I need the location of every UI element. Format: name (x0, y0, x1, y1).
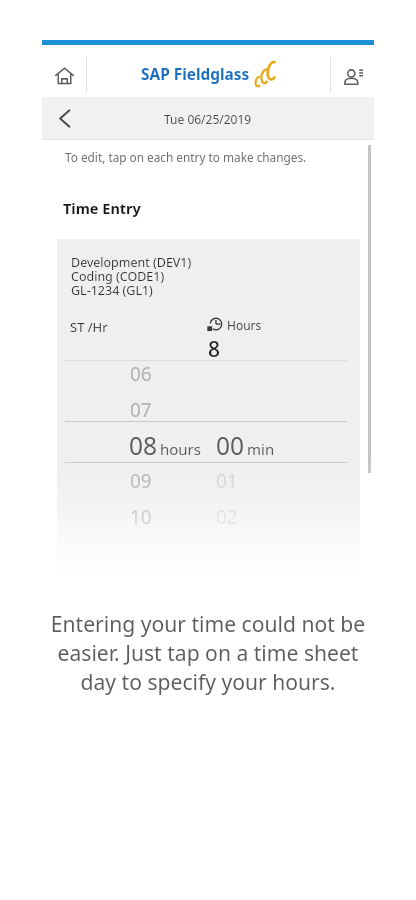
staticText: Entering your time could not be easier. … (40, 609, 376, 696)
staticText: Tue 06/25/2019 (164, 111, 252, 127)
staticText: SAP Fieldglass (141, 64, 250, 85)
staticText: 06 (130, 361, 152, 387)
staticText: 09 (130, 468, 152, 494)
button[interactable]: Home (42, 45, 86, 97)
staticText: 02 (216, 504, 238, 530)
staticText: 08 (129, 429, 158, 462)
staticText: Development (DEV1) Coding (CODE1) GL-123… (71, 254, 192, 299)
staticText: hours (160, 439, 201, 459)
staticText: 07 (130, 397, 152, 423)
staticText: min (247, 439, 275, 459)
staticText: Hours (227, 317, 262, 333)
staticText: 01 (216, 468, 238, 494)
staticText: ST /Hr (70, 318, 108, 336)
staticText: To edit, tap on each entry to make chang… (65, 149, 307, 165)
staticText: Time Entry (63, 198, 141, 218)
staticText: 8 (208, 335, 221, 364)
button[interactable]: Profile (331, 45, 374, 97)
staticText: 10 (130, 504, 152, 530)
button[interactable]: Back (42, 97, 86, 140)
staticText: 00 (216, 429, 245, 462)
